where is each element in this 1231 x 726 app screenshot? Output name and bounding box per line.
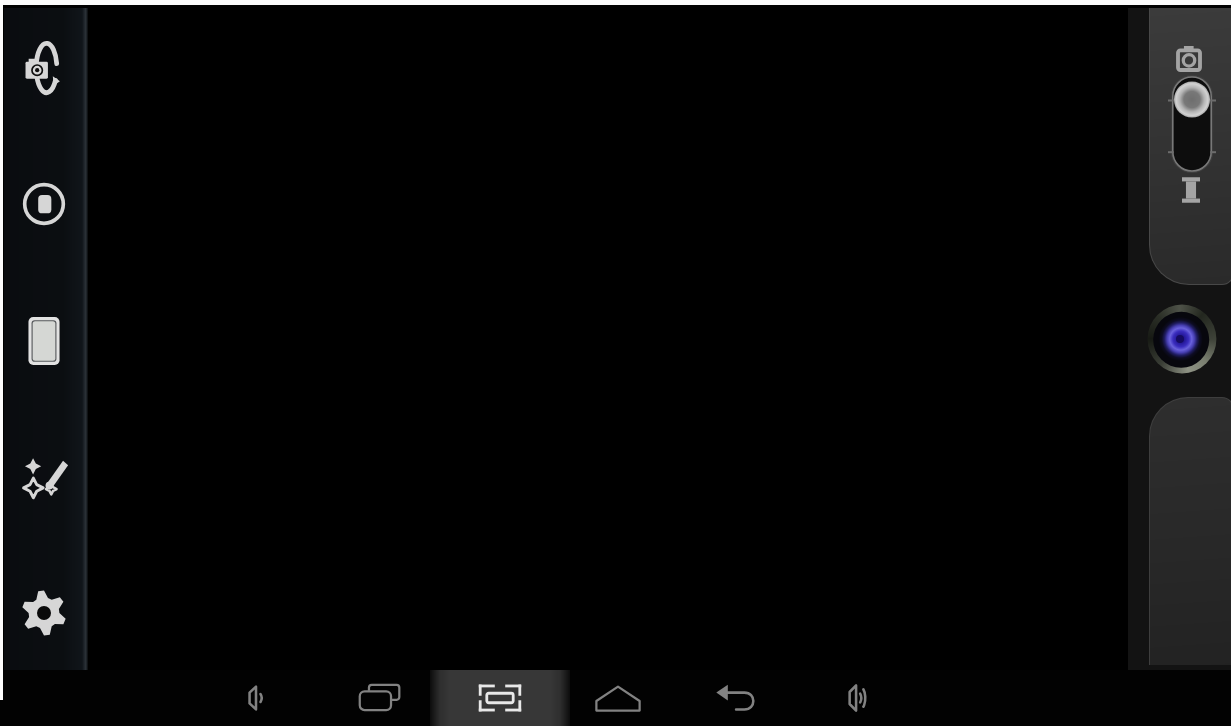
button[interactable]: Video mode — [1177, 176, 1205, 204]
button[interactable]: Settings — [4, 573, 84, 653]
button[interactable]: Exposure — [4, 164, 84, 244]
button[interactable]: Shutter — [1142, 299, 1222, 379]
button[interactable]: Switch camera — [4, 28, 84, 108]
button[interactable]: Photo mode — [1175, 44, 1203, 72]
button[interactable]: Back — [707, 673, 767, 723]
button[interactable]: Home — [588, 673, 648, 723]
button[interactable]: Recent apps — [350, 673, 410, 723]
button[interactable]: Screenshot — [430, 670, 570, 726]
button[interactable]: Volume down — [226, 673, 286, 723]
button[interactable]: Camera video mode toggle — [1168, 77, 1216, 171]
button[interactable]: Volume up — [827, 673, 887, 723]
button[interactable]: Aspect ratio — [4, 301, 84, 381]
button[interactable]: Effects — [4, 437, 84, 517]
